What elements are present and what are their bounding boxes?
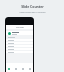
button[interactable]: tab2 [19,66,26,72]
button[interactable]: tab3 [26,66,33,72]
button[interactable]: tab0 [6,66,12,72]
button[interactable]: tab1 [12,66,19,72]
button[interactable] [6,42,33,44]
staticText: Make slides with a counter [19,11,46,14]
staticText: Counter [16,26,24,29]
button[interactable] [6,45,33,47]
button[interactable] [6,48,33,50]
button[interactable] [6,31,33,35]
button[interactable] [6,51,33,53]
button[interactable] [6,39,33,41]
staticText: Slide Counter [21,4,44,9]
